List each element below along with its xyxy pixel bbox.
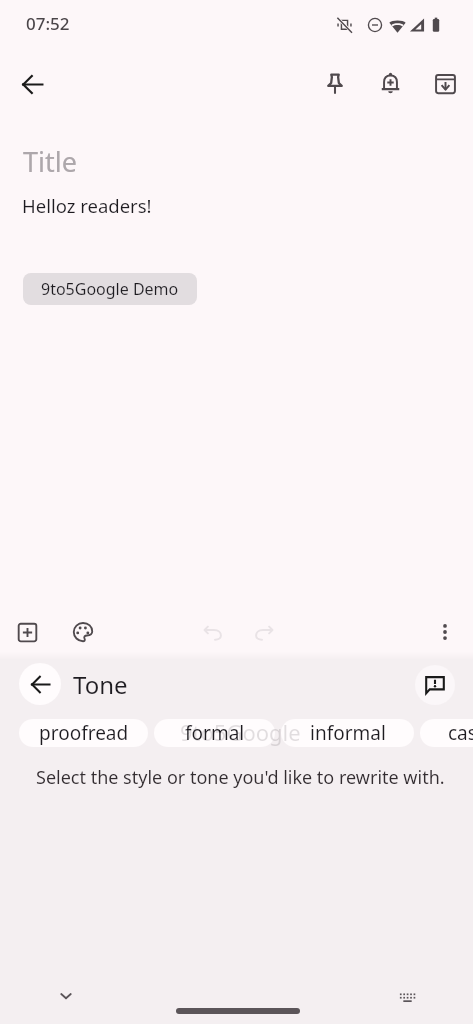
button[interactable]: Back <box>11 63 53 105</box>
button[interactable]: Add attachment <box>6 611 48 653</box>
staticText: Select the style or tone you'd like to r… <box>36 765 445 790</box>
staticText: 07:52 <box>26 12 70 35</box>
staticText: Helloz readers! <box>22 193 152 218</box>
button[interactable]: Send feedback <box>415 665 455 705</box>
staticText: formal <box>185 720 245 746</box>
button[interactable]: Change colour <box>62 611 104 653</box>
staticText: proofread <box>39 720 129 746</box>
button[interactable]: Add reminder <box>369 62 411 104</box>
staticText: Tone <box>73 668 128 701</box>
staticText: 9to5Google <box>180 717 301 747</box>
button[interactable]: proofread <box>19 719 148 747</box>
button[interactable]: More options <box>424 611 466 653</box>
staticText: 9to5Google Demo <box>41 278 179 300</box>
button[interactable]: Back <box>19 663 61 705</box>
button[interactable]: Show keyboard <box>394 983 420 1009</box>
button[interactable]: Undo <box>191 611 233 653</box>
button[interactable]: informal <box>281 719 414 747</box>
staticText: Title <box>23 143 77 180</box>
button[interactable]: 9to5Google Demo <box>23 273 197 305</box>
button[interactable]: Pin note <box>314 62 356 104</box>
button[interactable]: Hide keyboard <box>53 983 79 1009</box>
staticText: informal <box>310 720 386 746</box>
button[interactable]: Redo <box>243 611 285 653</box>
button[interactable]: casual <box>420 719 473 747</box>
staticText: casual <box>448 720 473 746</box>
button[interactable]: formal <box>154 719 275 747</box>
button[interactable]: Archive <box>424 62 466 104</box>
